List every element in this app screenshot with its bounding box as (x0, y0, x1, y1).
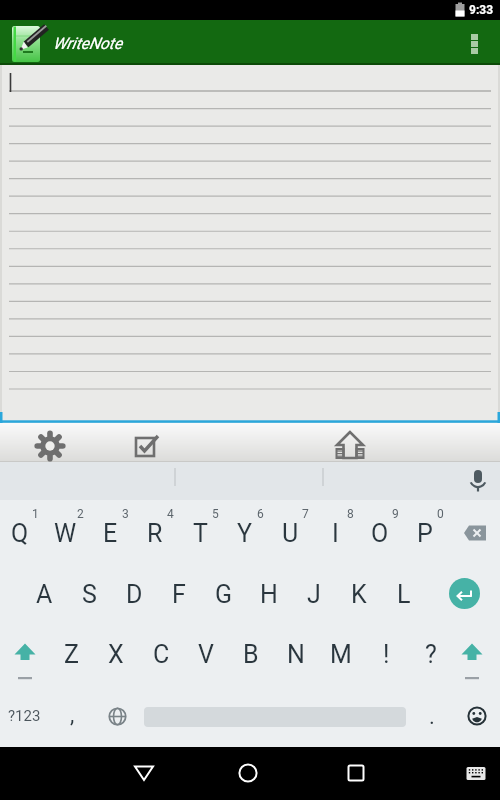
button[interactable]: L (374, 572, 434, 616)
staticText: K (351, 580, 367, 609)
staticText: E (103, 519, 118, 548)
staticText: G (215, 580, 233, 609)
staticText: M (330, 640, 352, 669)
button[interactable]: F (149, 572, 209, 616)
button[interactable]: P (395, 511, 455, 555)
button[interactable] (332, 749, 380, 797)
button[interactable]: H (239, 572, 299, 616)
staticText: 9:33 (469, 3, 494, 17)
button[interactable]: A (14, 572, 74, 616)
staticText: H (260, 580, 278, 609)
staticText: J (307, 580, 321, 609)
staticText: 2 (77, 507, 84, 521)
button[interactable]: ? (401, 632, 461, 676)
button[interactable]: X (86, 632, 146, 676)
button[interactable]: C (131, 632, 191, 676)
staticText: WriteNote (53, 34, 123, 53)
button[interactable] (461, 464, 495, 498)
staticText: A (36, 580, 53, 609)
staticText: S (82, 580, 97, 609)
staticText: X (108, 640, 124, 669)
staticText: 8 (347, 507, 354, 521)
button[interactable] (328, 426, 372, 465)
button[interactable]: J (284, 572, 344, 616)
staticText: B (243, 640, 259, 669)
staticText: T (193, 519, 208, 548)
button[interactable] (444, 573, 484, 613)
staticText: I (332, 519, 339, 548)
button[interactable]: K (329, 572, 389, 616)
button[interactable] (5, 635, 45, 675)
staticText: Q (11, 519, 29, 548)
staticText: ? (425, 640, 437, 669)
button[interactable]: D (104, 572, 164, 616)
staticText: 9 (392, 507, 399, 521)
staticText: F (172, 580, 186, 609)
staticText: N (287, 640, 305, 669)
button[interactable] (452, 749, 500, 797)
button[interactable]: Y (215, 511, 275, 555)
button[interactable]: T (170, 511, 230, 555)
button[interactable]: N (266, 632, 326, 676)
staticText: C (153, 640, 170, 669)
staticText: ! (383, 640, 390, 669)
button[interactable]: G (194, 572, 254, 616)
button[interactable]: S (59, 572, 119, 616)
staticText: U (282, 519, 299, 548)
button[interactable]: E (80, 511, 140, 555)
staticText: . (429, 704, 435, 730)
button[interactable] (455, 513, 495, 553)
staticText: L (397, 580, 411, 609)
button[interactable] (120, 749, 168, 797)
button[interactable]: . (402, 695, 462, 739)
staticText: W (54, 519, 77, 548)
button[interactable]: R (125, 511, 185, 555)
button[interactable] (457, 696, 497, 736)
staticText: , (70, 702, 75, 728)
staticText: 3 (122, 507, 129, 521)
staticText: O (371, 519, 389, 548)
staticText: 6 (257, 507, 264, 521)
button[interactable] (97, 696, 137, 736)
button[interactable]: I (305, 511, 365, 555)
staticText: 4 (167, 507, 174, 521)
staticText: Z (64, 640, 79, 669)
button[interactable]: B (221, 632, 281, 676)
button[interactable] (224, 749, 272, 797)
button[interactable] (126, 426, 170, 465)
button[interactable]: Z (41, 632, 101, 676)
staticText: 0 (437, 507, 444, 521)
staticText: ?123 (8, 707, 41, 725)
button[interactable] (458, 26, 490, 62)
staticText: P (417, 519, 433, 548)
button[interactable]: V (176, 632, 236, 676)
button[interactable]: M (311, 632, 371, 676)
button[interactable]: U (260, 511, 320, 555)
button[interactable] (0, 65, 500, 423)
button[interactable]: , (42, 693, 102, 737)
staticText: 5 (212, 507, 219, 521)
staticText: V (198, 640, 214, 669)
staticText: 1 (32, 507, 39, 521)
button[interactable]: ! (356, 632, 416, 676)
button[interactable]: Q (0, 511, 50, 555)
button[interactable] (28, 426, 72, 465)
button[interactable]: ?123 (0, 694, 54, 738)
staticText: Y (237, 519, 253, 548)
staticText: R (147, 519, 163, 548)
button[interactable] (452, 635, 492, 675)
button[interactable]: O (350, 511, 410, 555)
staticText: D (126, 580, 143, 609)
button[interactable]: W (35, 511, 95, 555)
staticText: 7 (302, 507, 309, 521)
